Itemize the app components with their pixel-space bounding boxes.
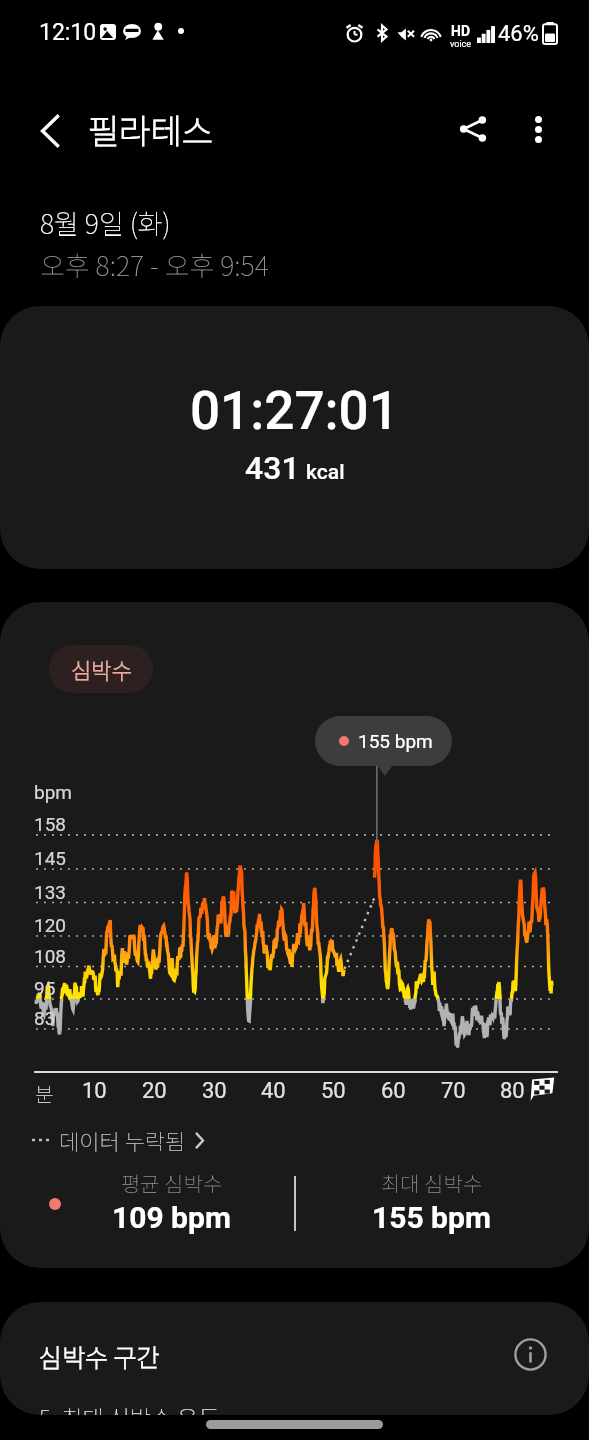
staticText: 심박수 구간 <box>39 1338 160 1374</box>
staticText: 109 bpm <box>112 1200 231 1235</box>
staticText: 60 <box>381 1078 406 1104</box>
button[interactable]: 01:27:01 <box>0 306 589 569</box>
button[interactable]: Back <box>20 101 80 161</box>
button[interactable]: Info <box>506 1330 555 1379</box>
staticText: kcal <box>306 460 345 485</box>
button[interactable]: 데이터 누락됨 <box>32 1124 205 1156</box>
staticText: 40 <box>261 1078 286 1104</box>
staticText: 01:27:01 <box>190 380 399 442</box>
staticText: 50 <box>321 1078 346 1104</box>
staticText: 83 <box>34 1007 56 1029</box>
staticText: 30 <box>202 1078 227 1104</box>
staticText: 10 <box>82 1078 107 1104</box>
staticText: voice <box>450 39 472 50</box>
staticText: 20 <box>142 1078 167 1104</box>
staticText: 70 <box>441 1078 466 1104</box>
button[interactable]: More options <box>508 99 568 159</box>
staticText: 분 <box>35 1079 54 1108</box>
button[interactable]: 심박수 <box>49 645 153 693</box>
staticText: 오후 8:27 - 오후 9:54 <box>40 245 269 284</box>
staticText: 최대 심박수 <box>381 1168 483 1198</box>
staticText: 158 <box>34 813 67 835</box>
staticText: 8월 9일 (화) <box>40 203 171 242</box>
staticText: 46% <box>498 21 539 47</box>
button[interactable]: Share <box>443 99 503 159</box>
button[interactable]: 155 bpm <box>315 716 452 766</box>
staticText: 심박수 <box>71 653 132 685</box>
staticText: 120 <box>34 914 67 936</box>
staticText: HD <box>451 23 471 39</box>
staticText: 80 <box>500 1078 525 1104</box>
staticText: 평균 심박수 <box>121 1168 223 1198</box>
staticText: 5. 최대 심박수 운동 <box>39 1400 220 1415</box>
staticText: 155 bpm <box>372 1200 491 1235</box>
staticText: 133 <box>34 881 67 903</box>
staticText: 데이터 누락됨 <box>59 1124 186 1156</box>
staticText: 필라테스 <box>88 105 214 154</box>
staticText: 145 <box>34 847 67 869</box>
staticText: 108 <box>34 945 67 967</box>
staticText: 95 <box>34 977 56 999</box>
staticText: 155 bpm <box>358 730 433 752</box>
staticText: 431 <box>245 449 300 487</box>
button[interactable]: 심박수 구간 <box>0 1302 589 1415</box>
staticText: 12:10 <box>39 19 97 46</box>
staticText: bpm <box>34 781 72 803</box>
